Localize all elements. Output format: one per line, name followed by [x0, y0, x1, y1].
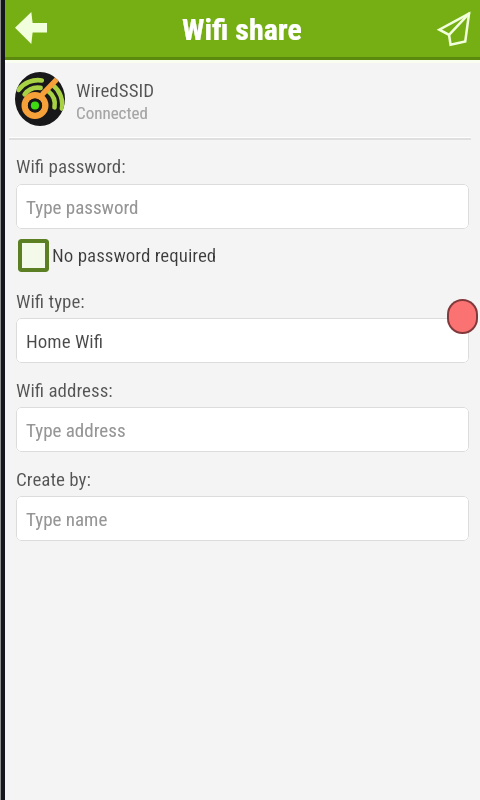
staticText: Type password — [26, 196, 139, 218]
staticText: Type name — [26, 508, 108, 530]
staticText: Create by: — [16, 468, 91, 490]
staticText: Connected — [76, 103, 148, 123]
staticText: Wifi password: — [16, 155, 126, 177]
button[interactable]: Back — [5, 0, 57, 57]
staticText: WiredSSID — [76, 79, 155, 101]
staticText: Wifi share — [182, 12, 302, 47]
button[interactable]: Home Wifi — [16, 318, 469, 363]
button[interactable]: No password required — [18, 238, 217, 272]
staticText: Wifi address: — [16, 379, 113, 401]
button[interactable]: Type address — [16, 407, 469, 452]
button[interactable]: Type name — [16, 496, 469, 541]
staticText: No password required — [52, 244, 217, 266]
staticText: Home Wifi — [26, 330, 104, 352]
button[interactable] — [5, 63, 475, 137]
button[interactable]: Send — [428, 0, 480, 57]
staticText: Wifi type: — [16, 290, 85, 312]
staticText: Type address — [26, 419, 126, 441]
button[interactable]: Type password — [16, 184, 469, 229]
